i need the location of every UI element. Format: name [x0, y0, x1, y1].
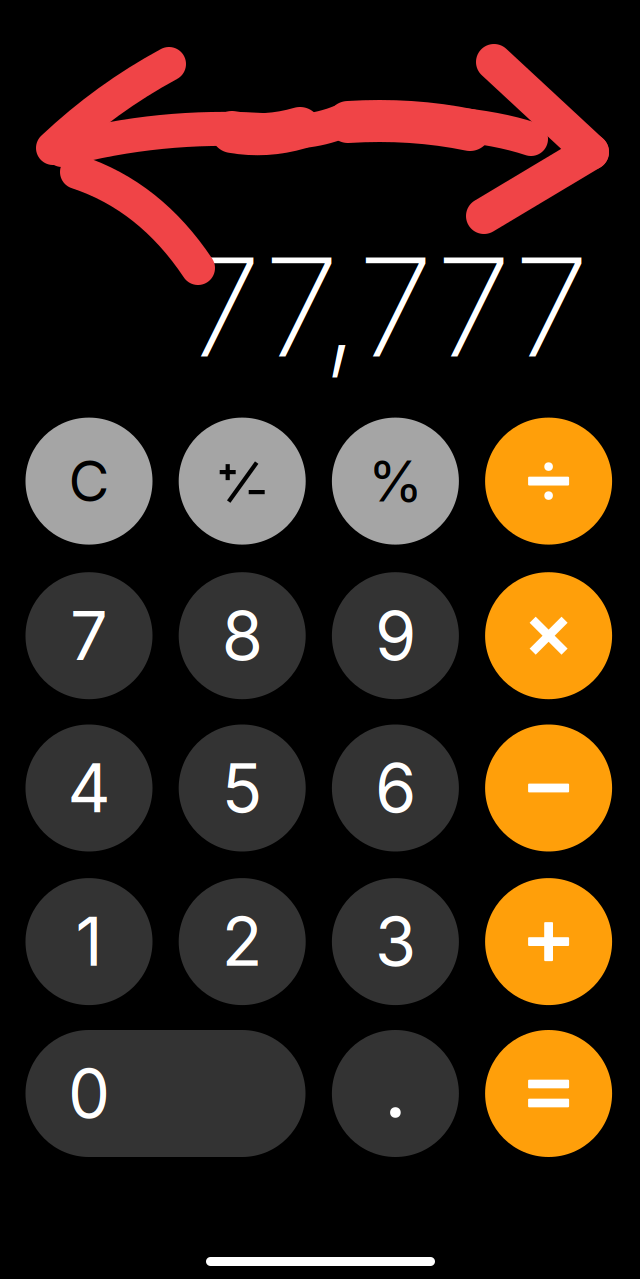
button[interactable]: 3	[332, 878, 459, 1005]
button[interactable]: Divide	[485, 418, 612, 545]
staticText: 4	[67, 748, 110, 828]
button[interactable]: Subtract	[485, 724, 612, 851]
staticText: 3	[375, 901, 416, 982]
button[interactable]: 0	[25, 1030, 305, 1157]
button[interactable]: Equals	[485, 1030, 612, 1157]
staticText: 1	[75, 901, 102, 982]
button[interactable]: Add	[485, 878, 612, 1005]
staticText: 2	[222, 901, 263, 982]
button[interactable]: 6	[332, 724, 459, 851]
button[interactable]: 8	[179, 572, 306, 699]
staticText: 9	[375, 595, 416, 676]
button[interactable]: C	[25, 418, 152, 545]
button[interactable]: Decimal point	[332, 1030, 459, 1157]
button[interactable]: 4	[25, 724, 152, 851]
button[interactable]: 5	[179, 724, 306, 851]
button[interactable]: %	[332, 418, 459, 545]
staticText: %	[368, 447, 423, 515]
staticText: 0	[68, 1053, 110, 1134]
staticText: 8	[222, 595, 263, 676]
staticText: C	[68, 447, 109, 515]
button[interactable]: 2	[179, 878, 306, 1005]
staticText: 77,777	[186, 225, 589, 389]
button[interactable]: 7	[25, 572, 152, 699]
button[interactable]: 1	[25, 878, 152, 1005]
button[interactable]: Plus minus, change sign	[179, 418, 306, 545]
button[interactable]: 9	[332, 572, 459, 699]
button[interactable]: Multiply	[485, 572, 612, 699]
staticText: 7	[70, 595, 108, 676]
staticText: 6	[375, 748, 416, 828]
staticText: 5	[222, 748, 263, 828]
